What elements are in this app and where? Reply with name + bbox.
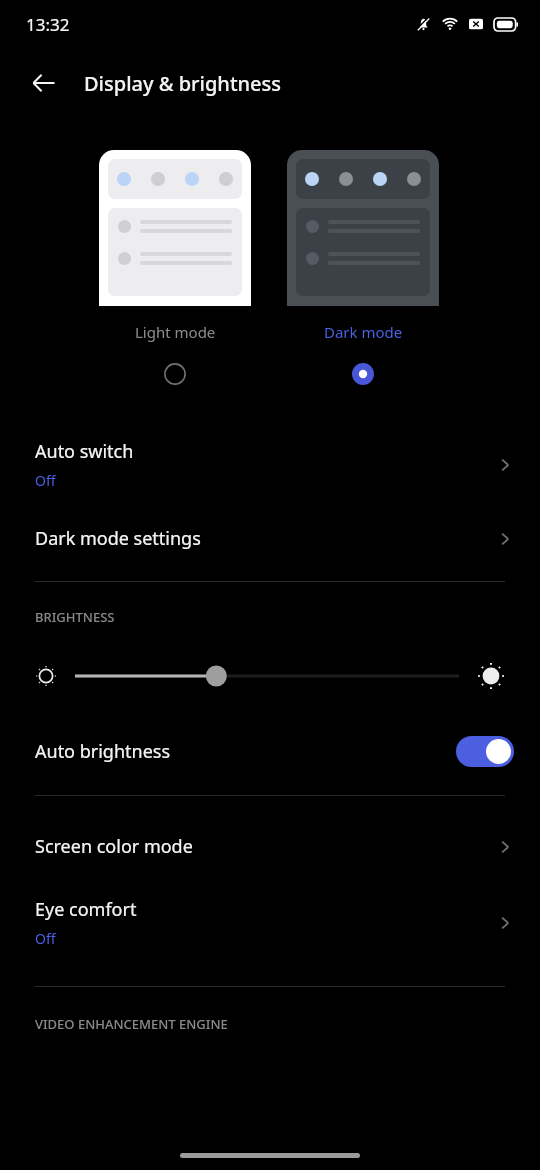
staticText: Dark mode bbox=[324, 322, 403, 342]
staticText: Light mode bbox=[135, 322, 216, 342]
button[interactable]: Auto switch bbox=[0, 419, 540, 510]
button[interactable] bbox=[287, 150, 439, 306]
staticText: Auto brightness bbox=[35, 739, 456, 764]
staticText: Display & brightness bbox=[84, 70, 281, 97]
button[interactable]: Auto brightness bbox=[0, 730, 540, 773]
staticText: Dark mode settings bbox=[35, 526, 201, 551]
button[interactable] bbox=[99, 150, 251, 306]
staticText: 13:32 bbox=[26, 13, 70, 36]
button[interactable]: Light mode bbox=[156, 355, 194, 393]
staticText: VIDEO ENHANCEMENT ENGINE bbox=[35, 1015, 228, 1033]
button[interactable] bbox=[456, 736, 514, 767]
staticText: Off bbox=[35, 929, 56, 948]
button[interactable]: Dark mode settings bbox=[0, 510, 540, 573]
staticText: BRIGHTNESS bbox=[35, 608, 115, 626]
staticText: Off bbox=[35, 471, 56, 490]
staticText: Eye comfort bbox=[35, 897, 137, 922]
button[interactable]: Brightness bbox=[75, 660, 459, 692]
staticText: Auto switch bbox=[35, 439, 134, 464]
button[interactable]: Screen color mode bbox=[0, 820, 540, 879]
staticText: Screen color mode bbox=[35, 834, 193, 859]
button[interactable]: Eye comfort bbox=[0, 879, 540, 968]
button[interactable]: Dark mode bbox=[344, 355, 382, 393]
button[interactable]: Back bbox=[20, 59, 68, 107]
